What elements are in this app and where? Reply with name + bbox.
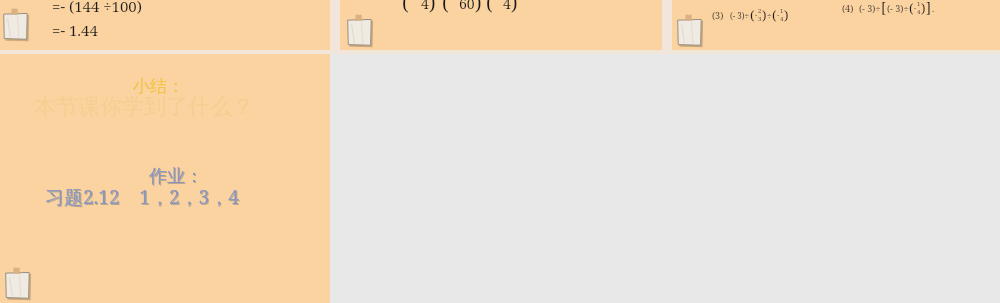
staticText: ) (762, 6, 767, 24)
staticText: (3) (712, 9, 724, 21)
staticText: (- 3)÷ (859, 2, 881, 14)
staticText: 4 (421, 0, 429, 13)
staticText: 60 (459, 0, 475, 13)
staticText: 4 (780, 15, 784, 23)
staticText: ) (475, 0, 482, 16)
staticText: (- 3)÷ (887, 2, 909, 14)
staticText: ] (926, 0, 932, 17)
staticText: 作业： (150, 166, 204, 189)
button[interactable]: 小结： (0, 54, 330, 303)
button[interactable]: Note attachment (676, 14, 704, 48)
staticText: 1 (917, 0, 921, 8)
staticText: . (932, 2, 935, 14)
staticText: ( (486, 0, 493, 16)
staticText: ÷ (767, 10, 772, 21)
button[interactable]: Note attachment (346, 14, 374, 48)
staticText: ) (511, 0, 518, 16)
staticText: 习题2.12 1，2，3，4 (46, 185, 240, 211)
staticText: 作业： (149, 165, 203, 188)
button[interactable]: Note attachment (672, 0, 1000, 50)
staticText: - (755, 10, 758, 20)
staticText: 本节课你学到了什么？ (34, 93, 254, 121)
staticText: ) (784, 6, 789, 24)
staticText: 习题2.12 1，2，3，4 (45, 184, 239, 210)
staticText: 小结： (133, 76, 184, 97)
staticText: 3 (758, 15, 762, 23)
staticText: [ (881, 0, 887, 17)
button[interactable]: Note attachment (0, 0, 330, 50)
staticText: - (777, 10, 780, 20)
button[interactable]: Note attachment (2, 8, 30, 42)
staticText: =- (144 ÷100) (52, 0, 142, 16)
staticText: (4) (842, 2, 854, 14)
staticText: ( (402, 0, 409, 16)
staticText: 4 (503, 0, 511, 13)
button[interactable]: Note attachment (4, 267, 32, 301)
staticText: ( (442, 0, 449, 16)
staticText: (- 3)÷ (730, 10, 750, 21)
staticText: - (914, 3, 917, 13)
staticText: ) (921, 0, 926, 17)
staticText: 2 (758, 7, 762, 15)
staticText: ( (909, 0, 914, 17)
staticText: 1 (780, 7, 784, 15)
staticText: =- 1.44 (52, 20, 98, 40)
staticText: ( (772, 6, 777, 24)
staticText: 4 (917, 8, 921, 16)
button[interactable]: Note attachment (340, 0, 662, 50)
staticText: ) (429, 0, 436, 16)
staticText: ( (750, 6, 755, 24)
